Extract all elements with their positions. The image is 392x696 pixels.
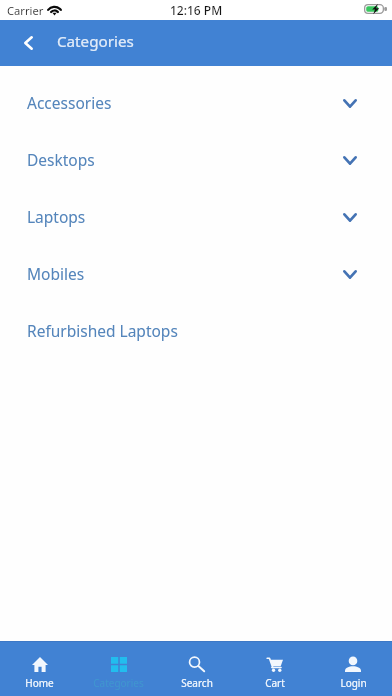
staticText: Accessories bbox=[27, 92, 112, 113]
staticText: 12:16 PM bbox=[170, 2, 223, 18]
button[interactable]: Categories bbox=[79, 641, 158, 696]
staticText: Laptops bbox=[27, 206, 86, 227]
button[interactable]: Desktops bbox=[0, 130, 392, 187]
button[interactable]: Refurbished Laptops bbox=[0, 301, 392, 358]
staticText: Categories bbox=[93, 676, 144, 690]
staticText: Carrier bbox=[7, 3, 44, 18]
button[interactable]: Search bbox=[158, 641, 236, 696]
button[interactable]: Home bbox=[0, 641, 79, 696]
button[interactable]: Laptops bbox=[0, 187, 392, 244]
staticText: Mobiles bbox=[27, 263, 85, 284]
staticText: Cart bbox=[265, 676, 285, 690]
staticText: Categories bbox=[57, 31, 134, 52]
button[interactable]: Back bbox=[7, 20, 49, 66]
button[interactable]: Accessories bbox=[0, 73, 392, 130]
staticText: Refurbished Laptops bbox=[27, 320, 178, 341]
staticText: Home bbox=[25, 676, 54, 690]
button[interactable]: Login bbox=[314, 641, 392, 696]
staticText: Desktops bbox=[27, 149, 95, 170]
button[interactable]: Mobiles bbox=[0, 244, 392, 301]
staticText: Search bbox=[181, 676, 213, 690]
button[interactable]: Cart bbox=[236, 641, 314, 696]
staticText: Login bbox=[340, 676, 367, 690]
